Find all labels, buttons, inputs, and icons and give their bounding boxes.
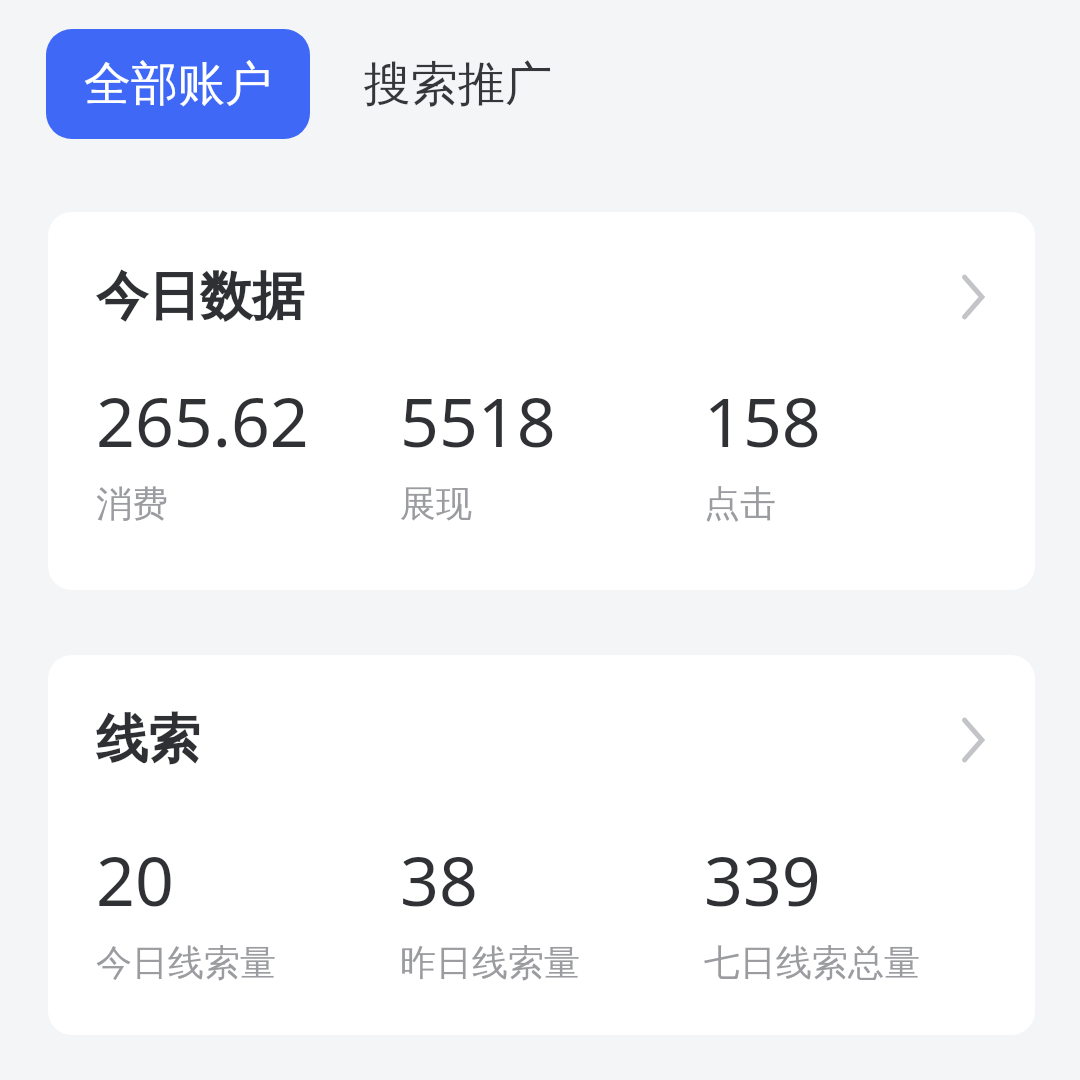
staticText: 今日数据	[96, 264, 304, 330]
staticText: 38	[400, 833, 478, 926]
staticText: 搜索推广	[364, 55, 552, 114]
staticText: 消费	[96, 481, 168, 526]
button[interactable]: 搜索推广	[310, 29, 606, 139]
staticText: 339	[704, 833, 821, 926]
staticText: 5518	[400, 374, 556, 467]
button[interactable]: 今日数据	[48, 212, 1035, 590]
staticText: 全部账户	[84, 55, 272, 114]
staticText: 158	[704, 374, 821, 467]
staticText: 七日线索总量	[704, 940, 920, 985]
staticText: 点击	[704, 481, 776, 526]
button[interactable]: 今日数据详情	[941, 264, 1007, 330]
staticText: 昨日线索量	[400, 940, 580, 985]
staticText: 展现	[400, 481, 472, 526]
button[interactable]: 全部账户	[46, 29, 310, 139]
staticText: 今日线索量	[96, 940, 276, 985]
button[interactable]: 线索	[48, 655, 1035, 1035]
staticText: 265.62	[96, 374, 309, 467]
button[interactable]: 线索详情	[941, 707, 1007, 773]
staticText: 线索	[96, 707, 200, 773]
staticText: 20	[96, 833, 174, 926]
